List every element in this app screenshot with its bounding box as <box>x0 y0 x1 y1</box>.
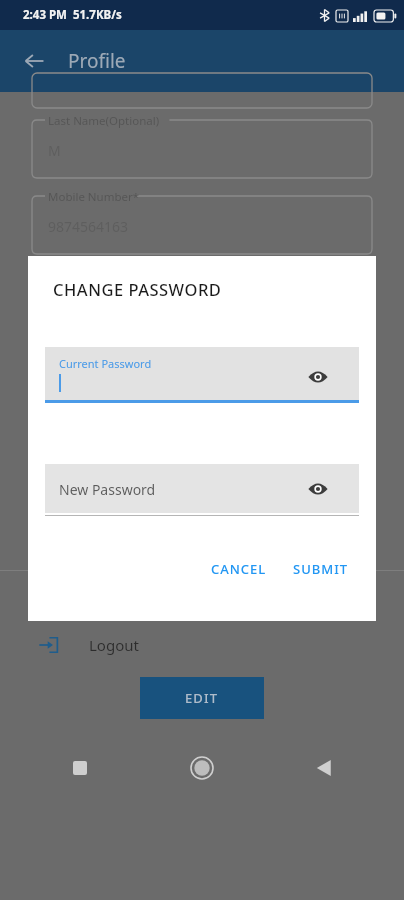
staticText: 2:43 PM 51.7KB/s <box>23 7 122 23</box>
button[interactable]: Recents <box>58 746 102 790</box>
button[interactable]: Toggle password visibility <box>301 472 335 506</box>
staticText: Current Password <box>59 356 152 371</box>
button[interactable]: City* <box>32 418 372 482</box>
button[interactable]: Address* <box>32 342 372 406</box>
staticText: 9874564163 <box>48 217 129 236</box>
staticText: EDIT <box>185 689 219 707</box>
button[interactable]: Logout <box>0 624 404 666</box>
button[interactable]: Home <box>180 746 224 790</box>
button[interactable]: Last Name(Optional) <box>32 114 372 178</box>
button[interactable]: Change Password <box>0 584 404 626</box>
staticText: Logout <box>89 635 139 655</box>
button[interactable]: CANCEL <box>205 554 273 584</box>
button[interactable]: Toggle password visibility <box>301 360 335 394</box>
button[interactable]: SUBMIT <box>287 554 355 584</box>
button[interactable]: New Password <box>45 464 359 516</box>
staticText: SUBMIT <box>293 560 349 578</box>
staticText: Mobile Number* <box>48 189 140 205</box>
staticText: CANCEL <box>211 560 267 578</box>
staticText: CHANGE PASSWORD <box>53 278 222 300</box>
button[interactable]: Current Password <box>45 347 359 403</box>
button[interactable]: Back <box>302 746 346 790</box>
button[interactable]: Mobile Number* <box>32 190 372 254</box>
staticText: Pincode* <box>48 493 98 509</box>
staticText: Profile <box>68 48 126 74</box>
button[interactable]: EDIT <box>140 677 264 719</box>
button[interactable]: Pincode* <box>32 494 372 558</box>
staticText: M <box>48 141 61 160</box>
button[interactable]: Email* <box>32 266 372 330</box>
staticText: Address* <box>48 341 98 357</box>
button[interactable]: Back <box>12 39 56 83</box>
staticText: Last Name(Optional) <box>48 113 160 129</box>
staticText: New Password <box>59 480 156 499</box>
